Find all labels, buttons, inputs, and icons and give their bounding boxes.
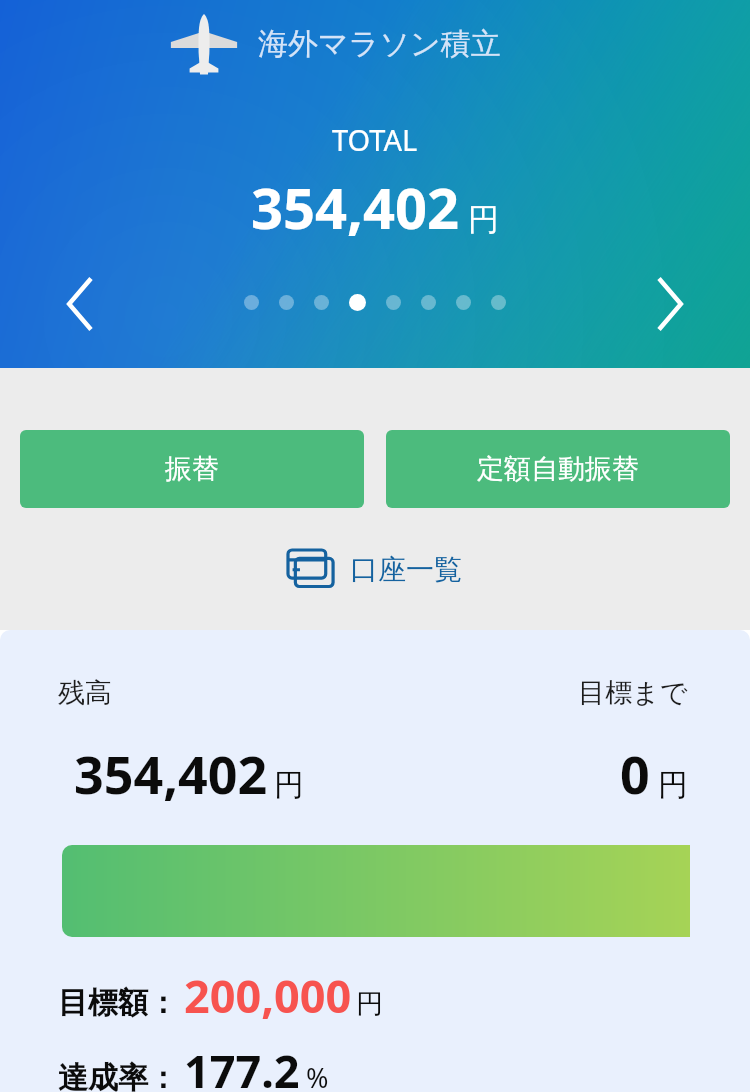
staticText: % <box>306 1059 329 1092</box>
button[interactable] <box>421 295 436 310</box>
staticText: 354,402 <box>251 169 460 245</box>
button[interactable] <box>279 295 294 310</box>
staticText: 残高 <box>58 676 112 710</box>
button[interactable] <box>349 294 366 311</box>
button[interactable] <box>491 295 506 310</box>
staticText: 円 <box>468 200 499 239</box>
staticText: 海外マラソン積立 <box>258 25 501 63</box>
staticText: 0 <box>620 738 650 809</box>
button[interactable] <box>314 295 329 310</box>
staticText: 口座一覧 <box>350 552 462 587</box>
button[interactable]: 次へ <box>634 268 706 340</box>
button[interactable]: 口座一覧 <box>280 546 470 592</box>
staticText: 円 <box>356 987 383 1021</box>
button[interactable] <box>244 295 259 310</box>
button[interactable]: 前へ <box>44 268 116 340</box>
button[interactable] <box>456 295 471 310</box>
staticText: 354,402 <box>74 738 268 809</box>
staticText: 目標額： <box>58 984 178 1022</box>
staticText: TOTAL <box>332 120 418 159</box>
staticText: 円 <box>658 766 688 804</box>
button[interactable]: 振替 <box>20 430 364 508</box>
button[interactable]: 定額自動振替 <box>386 430 730 508</box>
staticText: 目標まで <box>578 676 688 710</box>
staticText: 200,000 <box>184 965 352 1026</box>
staticText: 定額自動振替 <box>477 452 639 486</box>
staticText: 177.2 <box>184 1040 300 1092</box>
staticText: 達成率： <box>58 1059 178 1092</box>
staticText: 振替 <box>165 452 219 486</box>
button[interactable] <box>386 295 401 310</box>
staticText: 円 <box>274 766 304 804</box>
